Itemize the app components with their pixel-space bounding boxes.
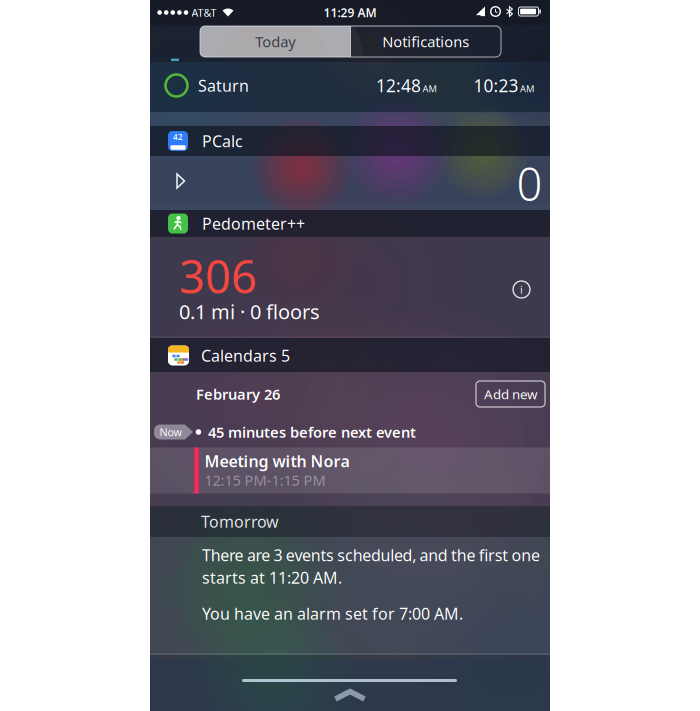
staticText: You have an alarm set for 7:00 AM.: [202, 603, 463, 624]
staticText: AT&T: [191, 5, 216, 20]
staticText: 306: [179, 246, 257, 306]
staticText: AM: [422, 82, 436, 95]
button[interactable]: More Info: [511, 279, 531, 299]
staticText: Today: [255, 32, 295, 51]
button[interactable]: Now: [150, 418, 550, 446]
staticText: PCalc: [202, 130, 243, 152]
staticText: 42: [173, 132, 183, 142]
staticText: Tomorrow: [201, 511, 279, 532]
staticText: 12:15 PM-1:15 PM: [204, 470, 325, 490]
staticText: 0.1 mi · 0 floors: [179, 298, 320, 325]
staticText: There are 3 events scheduled, and the fi…: [202, 544, 540, 566]
button[interactable]: Meeting with Nora: [150, 447, 550, 493]
staticText: February 26: [196, 384, 280, 404]
staticText: i: [520, 282, 523, 297]
staticText: Notifications: [382, 32, 469, 51]
button[interactable]: Add new: [476, 381, 545, 407]
staticText: starts at 11:20 AM.: [202, 567, 342, 588]
staticText: Meeting with Nora: [204, 450, 349, 472]
staticText: Pedometer++: [202, 213, 305, 234]
staticText: 11:29 AM: [323, 4, 376, 20]
staticText: 0: [516, 153, 542, 214]
staticText: 12:48: [376, 74, 421, 97]
staticText: Calendars 5: [201, 345, 290, 366]
button[interactable]: Close Notification Center: [333, 689, 367, 702]
staticText: Add new: [484, 385, 537, 403]
button[interactable]: Play: [176, 173, 186, 189]
staticText: 10:23: [473, 74, 518, 97]
staticText: Saturn: [198, 75, 249, 96]
staticText: AM: [520, 82, 534, 95]
button[interactable]: Today: [200, 26, 350, 57]
staticText: 45 minutes before next event: [208, 422, 416, 442]
staticText: Now: [159, 425, 181, 439]
button[interactable]: Notifications: [350, 26, 501, 57]
button[interactable]: Saturn: [150, 62, 550, 112]
